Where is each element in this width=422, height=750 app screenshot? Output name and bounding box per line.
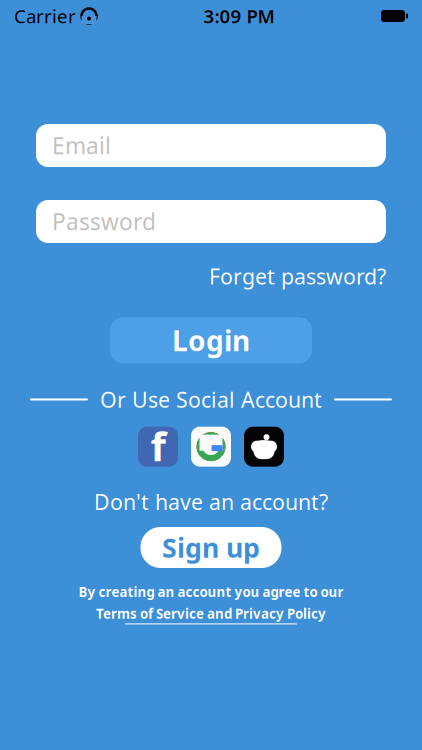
staticText: Terms of Service and Privacy Policy <box>96 605 326 622</box>
button[interactable]: Password <box>0 200 422 243</box>
staticText: Password <box>52 206 156 236</box>
staticText: Sign up <box>162 530 260 565</box>
button[interactable]: Forget password? <box>209 259 386 293</box>
staticText: f <box>150 419 165 472</box>
button[interactable]: Sign up <box>140 527 281 568</box>
button[interactable]: Terms of Service and Privacy Policy <box>96 605 326 624</box>
staticText: Forget password? <box>209 262 386 290</box>
staticText: 3:09 PM <box>203 4 274 28</box>
button[interactable]: Login <box>110 317 312 363</box>
button[interactable]: Sign in with Facebook <box>138 427 178 467</box>
staticText: Or Use Social Account <box>100 385 322 414</box>
staticText: Email <box>52 130 111 160</box>
staticText: Carrier <box>14 4 76 28</box>
button[interactable]: Email <box>0 124 422 167</box>
staticText: By creating an account you agree to our <box>78 583 343 601</box>
button[interactable]: Sign in with Google <box>191 427 231 467</box>
button[interactable]: Sign in with Apple <box>244 427 284 467</box>
staticText: Don't have an account? <box>94 488 328 516</box>
staticText: Login <box>172 322 250 359</box>
